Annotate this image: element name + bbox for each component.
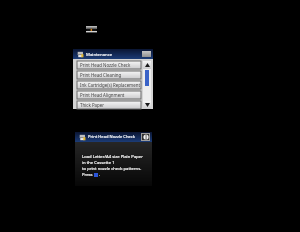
staticText: Press bbox=[82, 172, 94, 178]
staticText: Maintenance bbox=[86, 51, 113, 57]
staticText: Print Head Alignment bbox=[80, 92, 125, 98]
staticText: Print Head Nozzle Check bbox=[88, 134, 135, 140]
button[interactable]: Scroll down bbox=[143, 101, 151, 109]
staticText: Load Letter/A4 size Plain Paper bbox=[82, 154, 143, 160]
staticText: Print Head Cleaning bbox=[80, 72, 122, 78]
staticText: Print Head Nozzle Check bbox=[80, 62, 131, 68]
button[interactable]: Print Head Cleaning bbox=[77, 71, 141, 79]
staticText: in the Cassette 1 bbox=[82, 160, 115, 166]
button[interactable]: Thick Paper bbox=[77, 101, 141, 109]
staticText: Ink Cartridge(s) Replacement bbox=[80, 82, 140, 88]
staticText: . bbox=[98, 172, 101, 178]
button[interactable]: Print Head Nozzle Check bbox=[77, 61, 141, 69]
staticText: Thick Paper bbox=[80, 102, 104, 108]
button[interactable]: Print Head Alignment bbox=[77, 91, 141, 99]
button[interactable]: Help bbox=[142, 134, 149, 140]
staticText: to print nozzle check patterns. bbox=[82, 166, 142, 172]
button[interactable]: Ink Cartridge(s) Replacement bbox=[77, 81, 141, 89]
button[interactable]: Close bbox=[142, 51, 151, 57]
button[interactable]: Scroll up bbox=[143, 61, 151, 69]
